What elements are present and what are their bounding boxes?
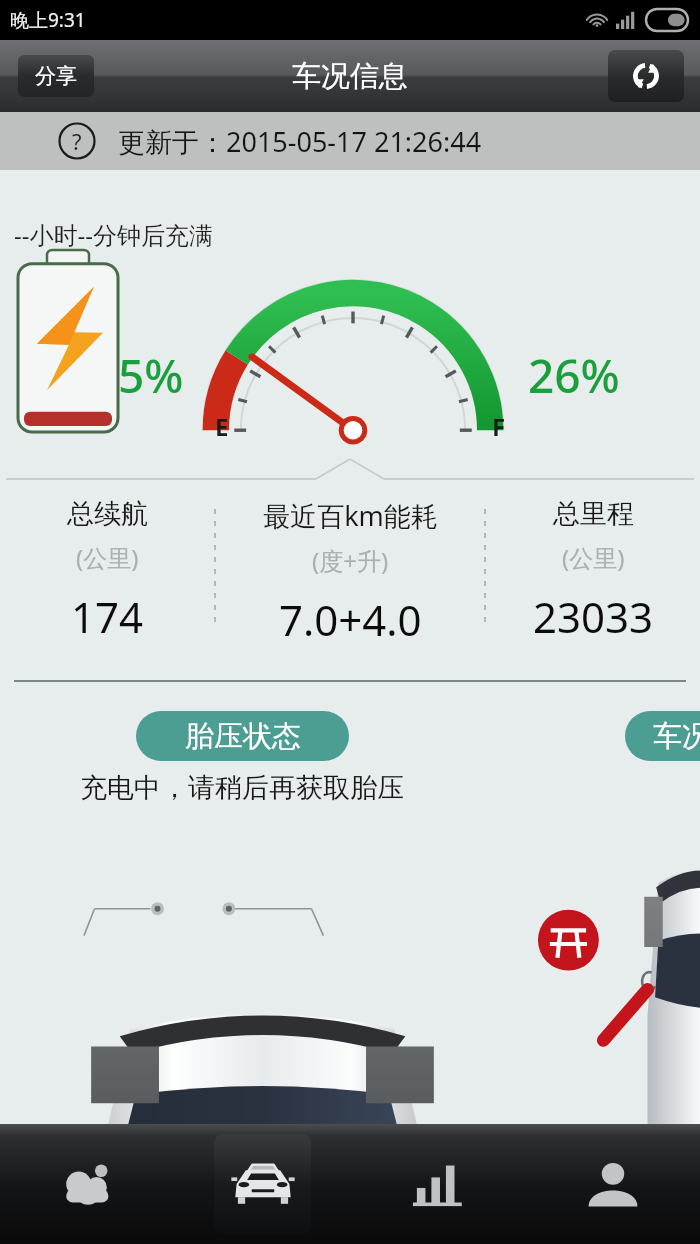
button[interactable]: 总里程 (486, 497, 700, 645)
button[interactable]: 最近百km能耗 (216, 497, 484, 648)
button[interactable]: 总续航 (0, 497, 214, 645)
button[interactable]: 帮助 (58, 122, 96, 160)
button[interactable]: 我的 (525, 1124, 700, 1244)
staticText: E (215, 410, 229, 443)
staticText: 174 (71, 588, 144, 645)
staticText: 23033 (533, 588, 654, 645)
staticText: 车况信息 (292, 58, 408, 95)
staticText: (公里) (76, 541, 139, 574)
staticText: 更新于：2015-05-17 21:26:44 (118, 123, 482, 160)
staticText: 车况状态 (653, 718, 700, 755)
staticText: 26% (528, 344, 620, 407)
staticText: 晚上9:31 (10, 7, 86, 33)
button[interactable]: 天气 (0, 1124, 175, 1244)
button[interactable]: 刷新 (608, 50, 684, 102)
staticText: ? (72, 126, 82, 156)
button[interactable]: 分享 (18, 55, 94, 97)
staticText: F (492, 410, 506, 443)
staticText: 充电中，请稍后再获取胎压 (80, 771, 404, 805)
button[interactable]: 统计 (350, 1124, 525, 1244)
staticText: 胎压状态 (185, 718, 301, 755)
staticText: 总里程 (553, 497, 634, 531)
button[interactable]: 车况状态 (625, 711, 700, 761)
staticText: 总续航 (67, 497, 148, 531)
staticText: 分享 (35, 63, 77, 89)
button[interactable]: 车辆 (175, 1124, 350, 1244)
button[interactable]: 胎压状态 (136, 711, 349, 761)
staticText: 7.0+4.0 (279, 591, 422, 648)
staticText: 5% (118, 344, 184, 407)
staticText: 最近百km能耗 (263, 497, 438, 534)
staticText: (度+升) (312, 544, 389, 577)
staticText: --小时--分钟后充满 (14, 218, 213, 251)
staticText: (公里) (562, 541, 625, 574)
